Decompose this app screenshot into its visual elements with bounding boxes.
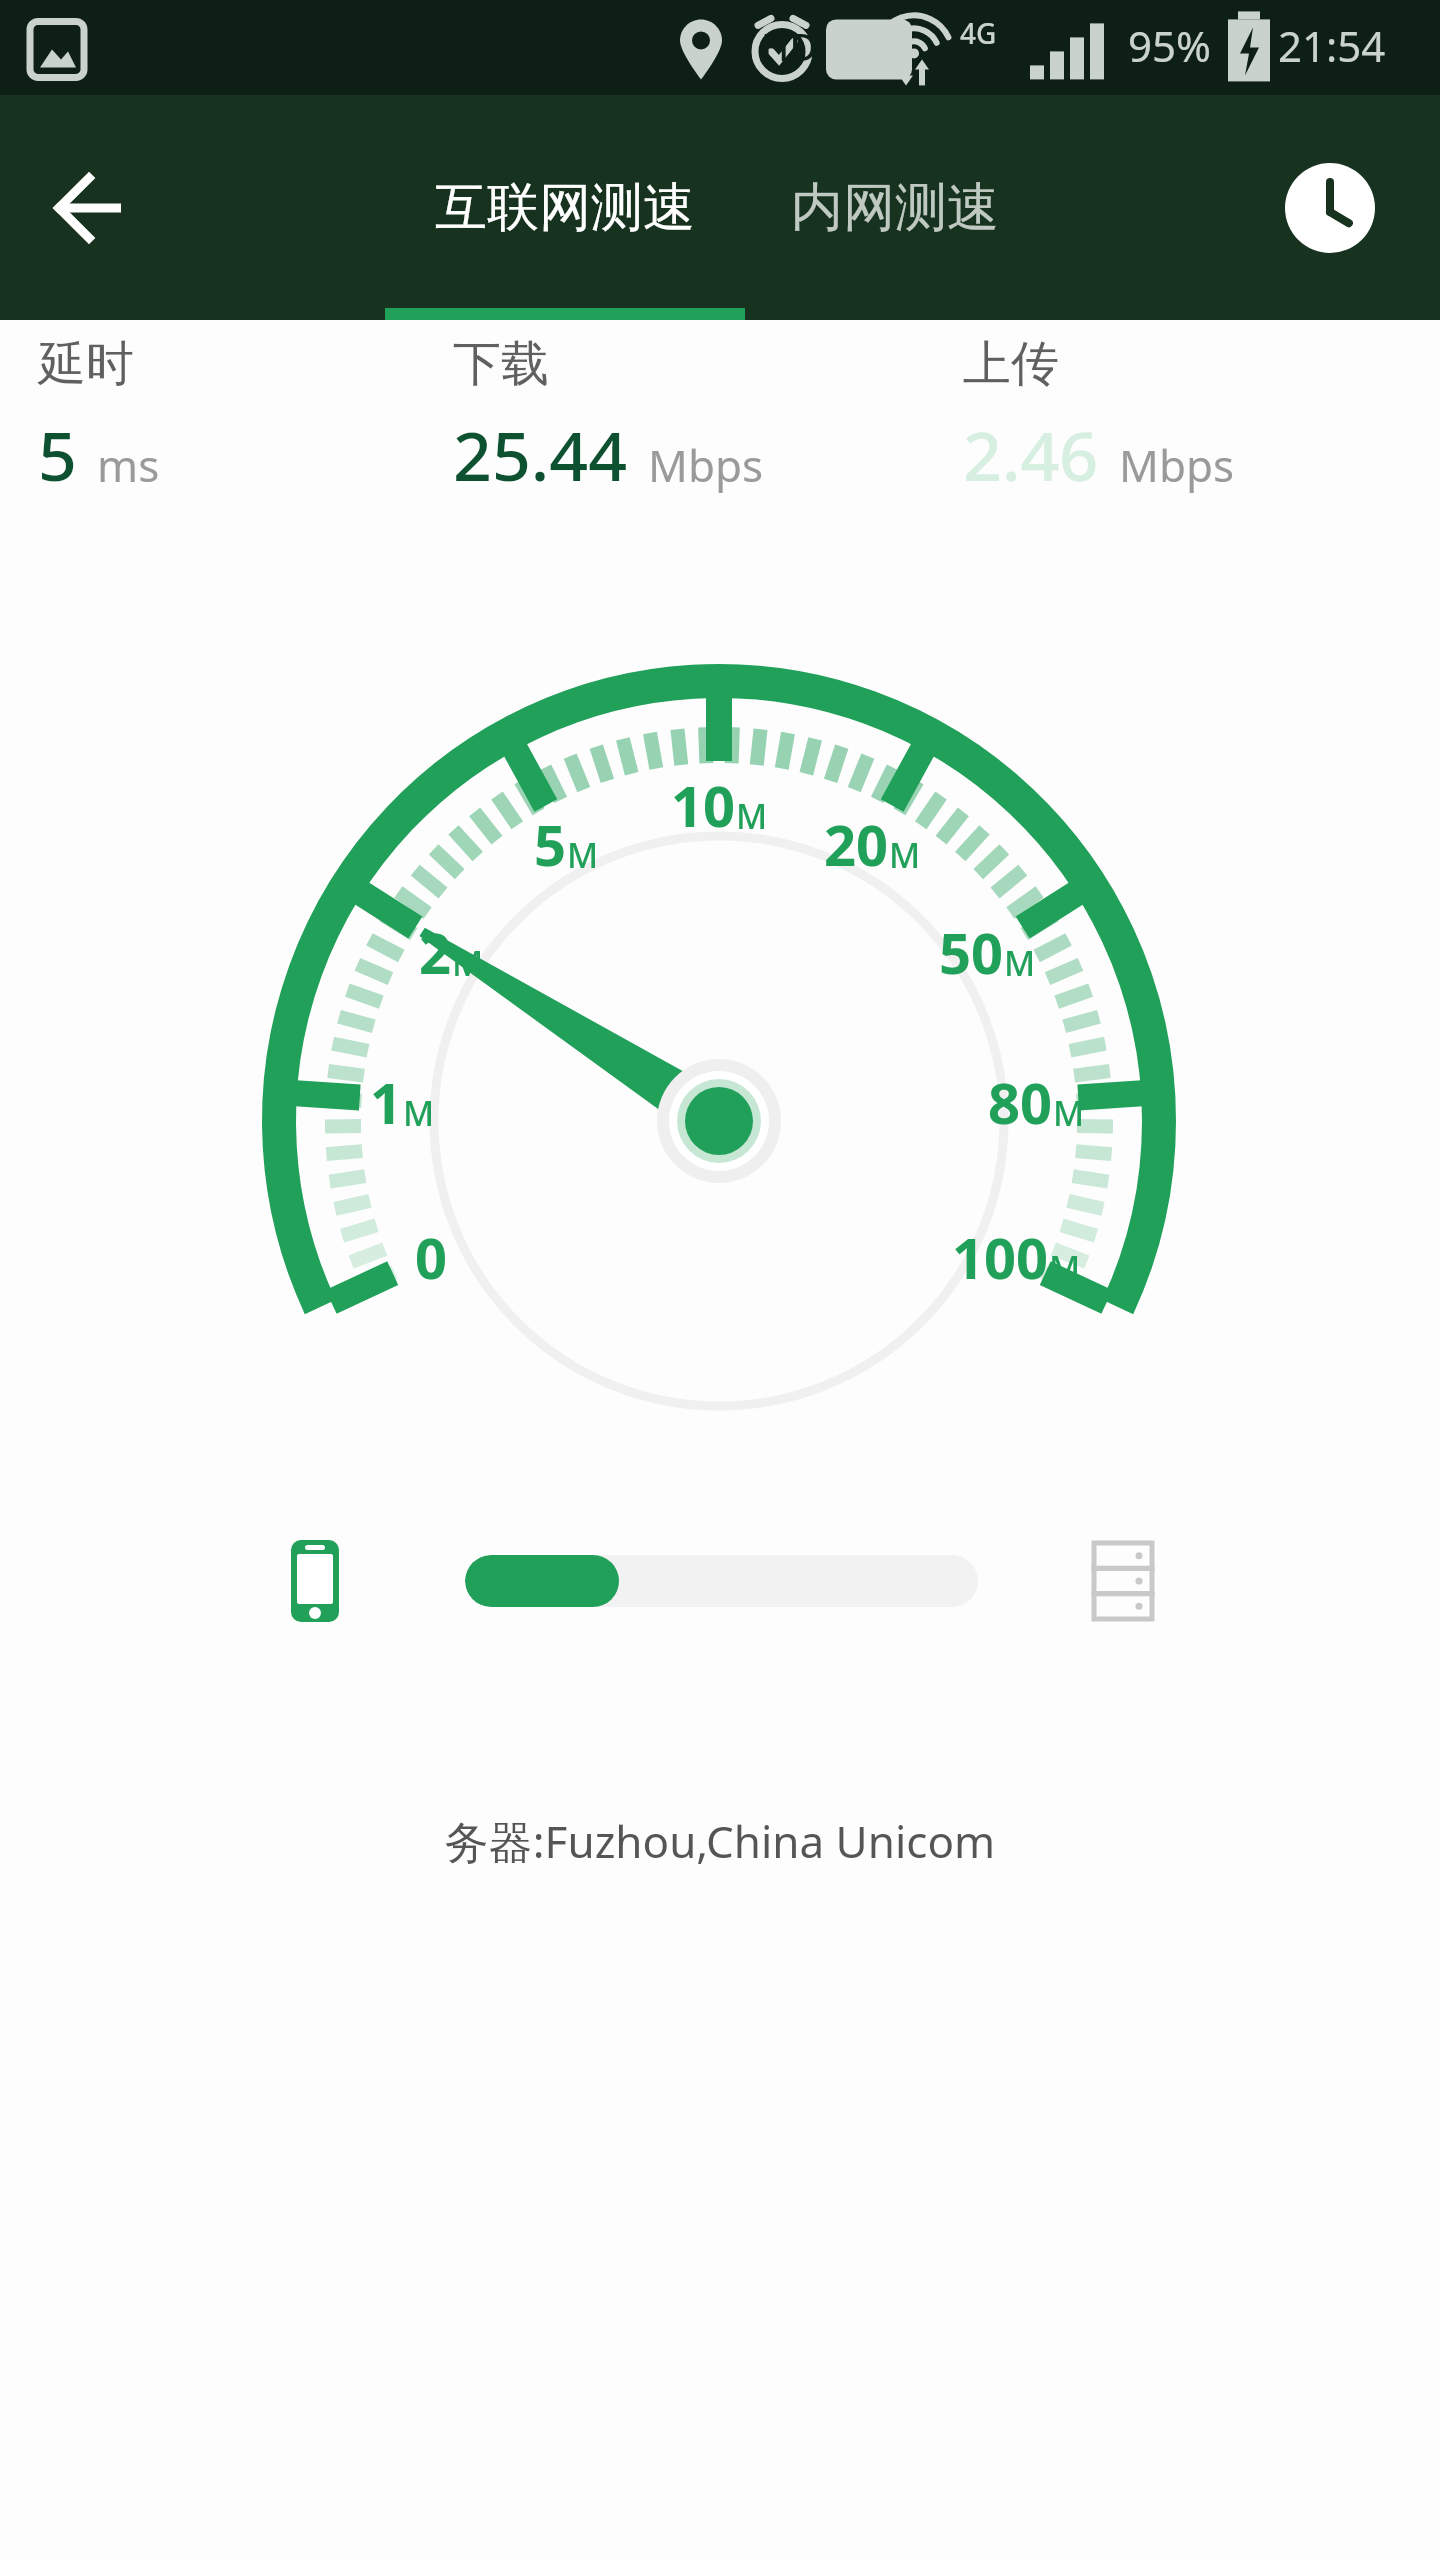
- staticText: Mbps: [648, 435, 764, 495]
- staticText: HD: [761, 20, 818, 72]
- staticText: 20: [824, 806, 889, 882]
- staticText: 内网测速: [791, 175, 999, 241]
- staticText: M: [736, 793, 768, 839]
- staticText: M: [1004, 940, 1036, 986]
- staticText: M: [452, 940, 484, 986]
- button[interactable]: Back: [30, 148, 150, 268]
- staticText: 21:54: [1278, 17, 1386, 74]
- button[interactable]: 互联网测速: [385, 95, 745, 320]
- staticText: 100: [952, 1219, 1049, 1295]
- staticText: 80: [988, 1064, 1053, 1140]
- staticText: 25.44: [453, 408, 628, 501]
- staticText: M: [403, 1090, 435, 1136]
- staticText: 下载: [453, 334, 549, 394]
- staticText: 1: [370, 1064, 403, 1140]
- button[interactable]: History: [1270, 148, 1390, 268]
- button[interactable]: Device: [270, 1536, 360, 1626]
- staticText: M: [889, 832, 921, 878]
- staticText: 0: [415, 1219, 448, 1295]
- staticText: M: [1053, 1090, 1085, 1136]
- button[interactable]: 内网测速: [745, 95, 1045, 320]
- staticText: ms: [97, 435, 160, 495]
- staticText: M: [1049, 1245, 1062, 1291]
- staticText: M: [567, 832, 599, 878]
- staticText: 务器:Fuzhou,China Unicom: [0, 1811, 1440, 1871]
- staticText: 延时: [38, 334, 134, 394]
- staticText: 95%: [1128, 17, 1211, 74]
- button[interactable]: [465, 1555, 978, 1607]
- staticText: 10: [671, 767, 736, 843]
- staticText: 2: [419, 914, 452, 990]
- staticText: 互联网测速: [435, 175, 695, 241]
- staticText: Mbps: [1119, 435, 1235, 495]
- button[interactable]: Server: [1078, 1536, 1168, 1626]
- staticText: 5: [534, 806, 567, 882]
- staticText: 50: [939, 914, 1004, 990]
- staticText: 上传: [963, 334, 1059, 394]
- staticText: 5: [38, 408, 77, 501]
- staticText: 4G: [960, 14, 997, 52]
- staticText: 2.46: [963, 408, 1099, 501]
